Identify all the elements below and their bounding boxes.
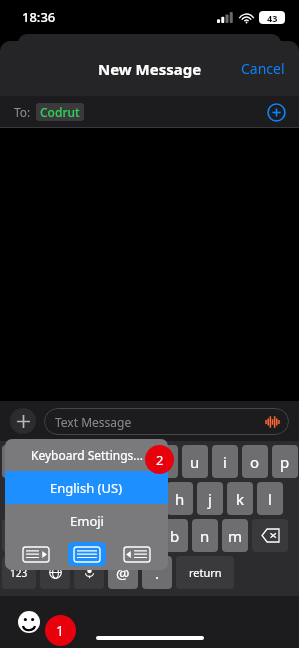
button[interactable]: @ — [108, 556, 138, 589]
button[interactable]: q — [2, 445, 28, 478]
staticText: n — [200, 526, 210, 546]
button[interactable]: English (US) — [5, 471, 168, 504]
staticText: l — [268, 489, 272, 509]
staticText: 1 — [56, 621, 65, 640]
staticText: English (US) — [50, 479, 123, 497]
staticText: w — [39, 452, 51, 472]
staticText: 2 — [156, 451, 164, 469]
button[interactable]: Keyboard Settings... — [5, 439, 168, 471]
staticText: Emoji — [70, 512, 104, 530]
staticText: g — [145, 489, 155, 509]
staticText: s — [56, 489, 64, 509]
staticText: p — [280, 452, 290, 472]
staticText: Text Message — [55, 414, 132, 430]
button[interactable]: Codrut — [36, 103, 84, 121]
button[interactable]: w — [32, 445, 58, 478]
button[interactable]: shift — [2, 519, 38, 552]
button[interactable]: . — [142, 556, 172, 589]
button[interactable]: Cancel — [227, 49, 299, 88]
staticText: 43 — [267, 12, 278, 24]
button[interactable]: y — [152, 445, 178, 478]
staticText: m — [228, 526, 243, 546]
button[interactable]: n — [192, 519, 218, 552]
staticText: To: — [14, 104, 31, 120]
button[interactable]: r — [92, 445, 118, 478]
button[interactable]: del — [252, 519, 288, 552]
staticText: Cancel — [241, 59, 285, 78]
button[interactable]: Text Message — [44, 408, 289, 435]
button[interactable]: k — [227, 482, 253, 515]
button[interactable]: s — [47, 482, 73, 515]
staticText: u — [190, 452, 200, 472]
button[interactable]: o — [242, 445, 268, 478]
button[interactable]: e — [62, 445, 88, 478]
button[interactable]: Emoji — [5, 504, 168, 537]
button[interactable]: Dock keyboard left — [17, 542, 55, 566]
button[interactable]: Full keyboard — [68, 542, 106, 566]
staticText: New Message — [98, 59, 202, 79]
staticText: @ — [116, 563, 130, 583]
button[interactable]: p — [272, 445, 298, 478]
button[interactable]: v — [132, 519, 158, 552]
staticText: o — [250, 452, 260, 472]
staticText: e — [71, 452, 80, 472]
staticText: h — [175, 489, 185, 509]
staticText: t — [132, 452, 138, 472]
button[interactable]: Add contact — [265, 101, 287, 123]
staticText: 18:36 — [22, 8, 56, 26]
button[interactable]: g — [137, 482, 163, 515]
staticText: x — [81, 526, 89, 546]
button[interactable]: a — [17, 482, 43, 515]
button[interactable]: h — [167, 482, 193, 515]
button[interactable]: 123 — [2, 556, 36, 589]
staticText: . — [155, 563, 160, 583]
staticText: i — [223, 452, 227, 472]
staticText: f — [117, 489, 123, 509]
button[interactable]: Attach — [10, 408, 36, 434]
button[interactable]: Dock keyboard right — [118, 542, 156, 566]
staticText: y — [161, 452, 169, 472]
staticText: 123 — [10, 566, 28, 580]
staticText: q — [10, 452, 20, 472]
button[interactable]: l — [257, 482, 283, 515]
staticText: return — [189, 565, 222, 580]
button[interactable]: t — [122, 445, 148, 478]
staticText: Keyboard Settings... — [31, 447, 143, 463]
staticText: d — [85, 489, 95, 509]
button[interactable]: u — [182, 445, 208, 478]
staticText: b — [170, 526, 180, 546]
button[interactable]: b — [162, 519, 188, 552]
button[interactable]: d — [77, 482, 103, 515]
staticText: Codrut — [40, 104, 80, 120]
button[interactable]: mic — [74, 556, 104, 589]
staticText: r — [102, 452, 109, 472]
button[interactable]: f — [107, 482, 133, 515]
staticText: j — [208, 489, 212, 509]
button[interactable]: c — [102, 519, 128, 552]
button[interactable]: i — [212, 445, 238, 478]
staticText: k — [236, 489, 245, 509]
button[interactable]: Emoji — [16, 609, 42, 635]
button[interactable]: Audio message — [264, 414, 280, 430]
staticText: a — [26, 489, 35, 509]
button[interactable]: j — [197, 482, 223, 515]
button[interactable]: m — [222, 519, 248, 552]
button[interactable]: x — [72, 519, 98, 552]
button[interactable]: globe — [40, 556, 70, 589]
button[interactable]: z — [42, 519, 68, 552]
button[interactable]: return — [176, 556, 234, 589]
